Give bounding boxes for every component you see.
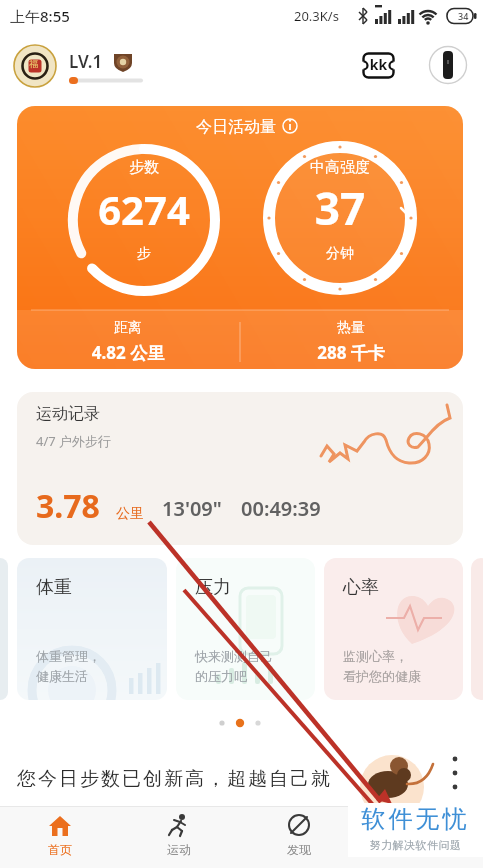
button[interactable]: 首页 (30, 808, 90, 866)
staticText: kk (362, 55, 395, 74)
staticText: 努力解决软件问题 (348, 838, 483, 852)
staticText: 您今日步数已创新高，超越自己就 (16, 767, 331, 791)
staticText: 20.3K/s (294, 7, 339, 25)
staticText: 6274 (64, 182, 224, 236)
staticText: 4.82 公里 (63, 341, 193, 364)
staticText: 分钟 (290, 245, 390, 263)
staticText: 快来测测自己 的压力吧 (195, 648, 273, 685)
button[interactable]: 今日活动量 (17, 106, 463, 369)
staticText: 运动 (149, 842, 209, 857)
staticText: 上午8:55 (10, 6, 70, 26)
staticText: 热量 (301, 319, 401, 337)
staticText: 体重管理， 健康生活 (36, 648, 101, 685)
staticText: 发现 (269, 842, 329, 857)
button[interactable]: 软件无忧 (348, 803, 483, 857)
staticText: 公里 (116, 505, 144, 523)
staticText: 3.78 (36, 484, 100, 528)
staticText: 心率 (343, 576, 379, 599)
staticText: 步数 (94, 158, 194, 177)
staticText: 运动记录 (36, 404, 100, 424)
button[interactable]: 心率 (324, 558, 463, 700)
staticText: 距离 (78, 319, 178, 337)
staticText: 步 (94, 245, 194, 263)
button[interactable]: 压力 (176, 558, 315, 700)
button[interactable]: kk (362, 52, 395, 79)
button[interactable]: 运动 (149, 808, 209, 866)
staticText: LV.1 (69, 50, 103, 73)
staticText: 首页 (30, 842, 90, 857)
staticText: 37 (260, 178, 420, 238)
staticText: 中高强度 (290, 158, 390, 177)
staticText: 00:49:39 (241, 495, 321, 522)
staticText: 压力 (195, 576, 231, 599)
staticText: 288 千卡 (286, 341, 416, 364)
staticText: 34 (458, 10, 469, 22)
button[interactable]: 运动记录 (17, 392, 463, 545)
staticText: 4/7 户外步行 (36, 432, 112, 450)
button[interactable]: 体重 (17, 558, 167, 700)
staticText: 今日活动量 (191, 117, 281, 137)
button[interactable] (429, 46, 467, 84)
button[interactable]: 您今日步数已创新高，超越自己就 (0, 745, 483, 805)
staticText: 13'09" (162, 495, 222, 522)
staticText: 软件无忧 (348, 804, 483, 834)
staticText: 体重 (36, 576, 72, 599)
button[interactable]: 发现 (269, 808, 329, 866)
staticText: 福 (29, 58, 38, 69)
staticText: 监测心率， 看护您的健康 (343, 648, 421, 685)
